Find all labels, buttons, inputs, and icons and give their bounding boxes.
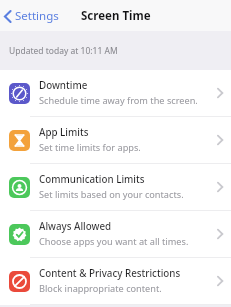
staticText: App Limits	[39, 126, 89, 139]
staticText: Content & Privacy Restrictions	[39, 267, 181, 280]
staticText: Communication Limits	[39, 173, 145, 186]
staticText: Set time limits for apps.	[39, 141, 141, 154]
button[interactable]: Content & Privacy Restrictions	[0, 258, 231, 304]
staticText: Choose apps you want at all times.	[39, 235, 189, 248]
staticText: Screen Time	[81, 8, 151, 24]
staticText: Block inappropriate content.	[39, 282, 162, 295]
button[interactable]: App Limits	[0, 117, 231, 163]
button[interactable]: Downtime	[0, 70, 231, 116]
staticText: Updated today at 10:11 AM	[9, 45, 118, 57]
button[interactable]: Settings	[0, 4, 65, 28]
staticText: Downtime	[39, 79, 88, 92]
staticText: Settings	[15, 8, 59, 24]
button[interactable]: Always Allowed	[0, 211, 231, 257]
staticText: Schedule time away from the screen.	[39, 94, 198, 107]
staticText: Set limits based on your contacts.	[39, 188, 184, 201]
button[interactable]: Communication Limits	[0, 164, 231, 210]
staticText: Always Allowed	[39, 220, 112, 233]
